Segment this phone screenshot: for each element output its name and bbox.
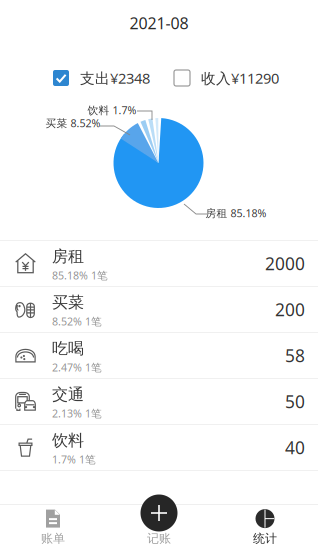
button[interactable]: 房租 [0, 241, 318, 287]
staticText: 支出¥2348 [80, 68, 150, 88]
staticText: 收入¥11290 [201, 68, 279, 88]
staticText: 房租 [52, 247, 84, 266]
staticText: 统计 [253, 531, 277, 546]
button[interactable]: 交通 [0, 379, 318, 425]
button[interactable]: 支出¥2348 [53, 68, 150, 88]
button[interactable]: 饮料 [0, 425, 318, 471]
staticText: 40 [285, 436, 305, 459]
staticText: 85.18% 1笔 [52, 268, 108, 282]
button[interactable]: 收入¥11290 [174, 68, 279, 88]
staticText: 吃喝 [52, 339, 84, 358]
staticText: 饮料 1.7% [87, 103, 136, 117]
staticText: 账单 [41, 531, 65, 546]
staticText: 2.47% 1笔 [52, 360, 102, 374]
staticText: 2021-08 [129, 12, 188, 34]
staticText: 记账 [147, 531, 171, 546]
button[interactable]: 账单 [0, 505, 106, 550]
button[interactable]: 买菜 [0, 287, 318, 333]
staticText: 2000 [265, 252, 305, 275]
button[interactable]: 统计 [212, 505, 318, 550]
staticText: 1.7% 1笔 [52, 452, 96, 466]
button[interactable]: 记账 [106, 505, 212, 550]
staticText: 58 [285, 344, 305, 367]
staticText: 饮料 [52, 431, 84, 450]
staticText: 房租 85.18% [205, 206, 266, 220]
staticText: 8.52% 1笔 [52, 314, 102, 328]
staticText: 交通 [52, 385, 84, 404]
staticText: 买菜 [52, 293, 84, 312]
staticText: 50 [285, 390, 305, 413]
button[interactable]: 吃喝 [0, 333, 318, 379]
staticText: 2.13% 1笔 [52, 406, 102, 420]
staticText: 买菜 8.52% [45, 116, 100, 130]
staticText: 200 [275, 298, 305, 321]
button[interactable]: 记账 [140, 494, 177, 531]
